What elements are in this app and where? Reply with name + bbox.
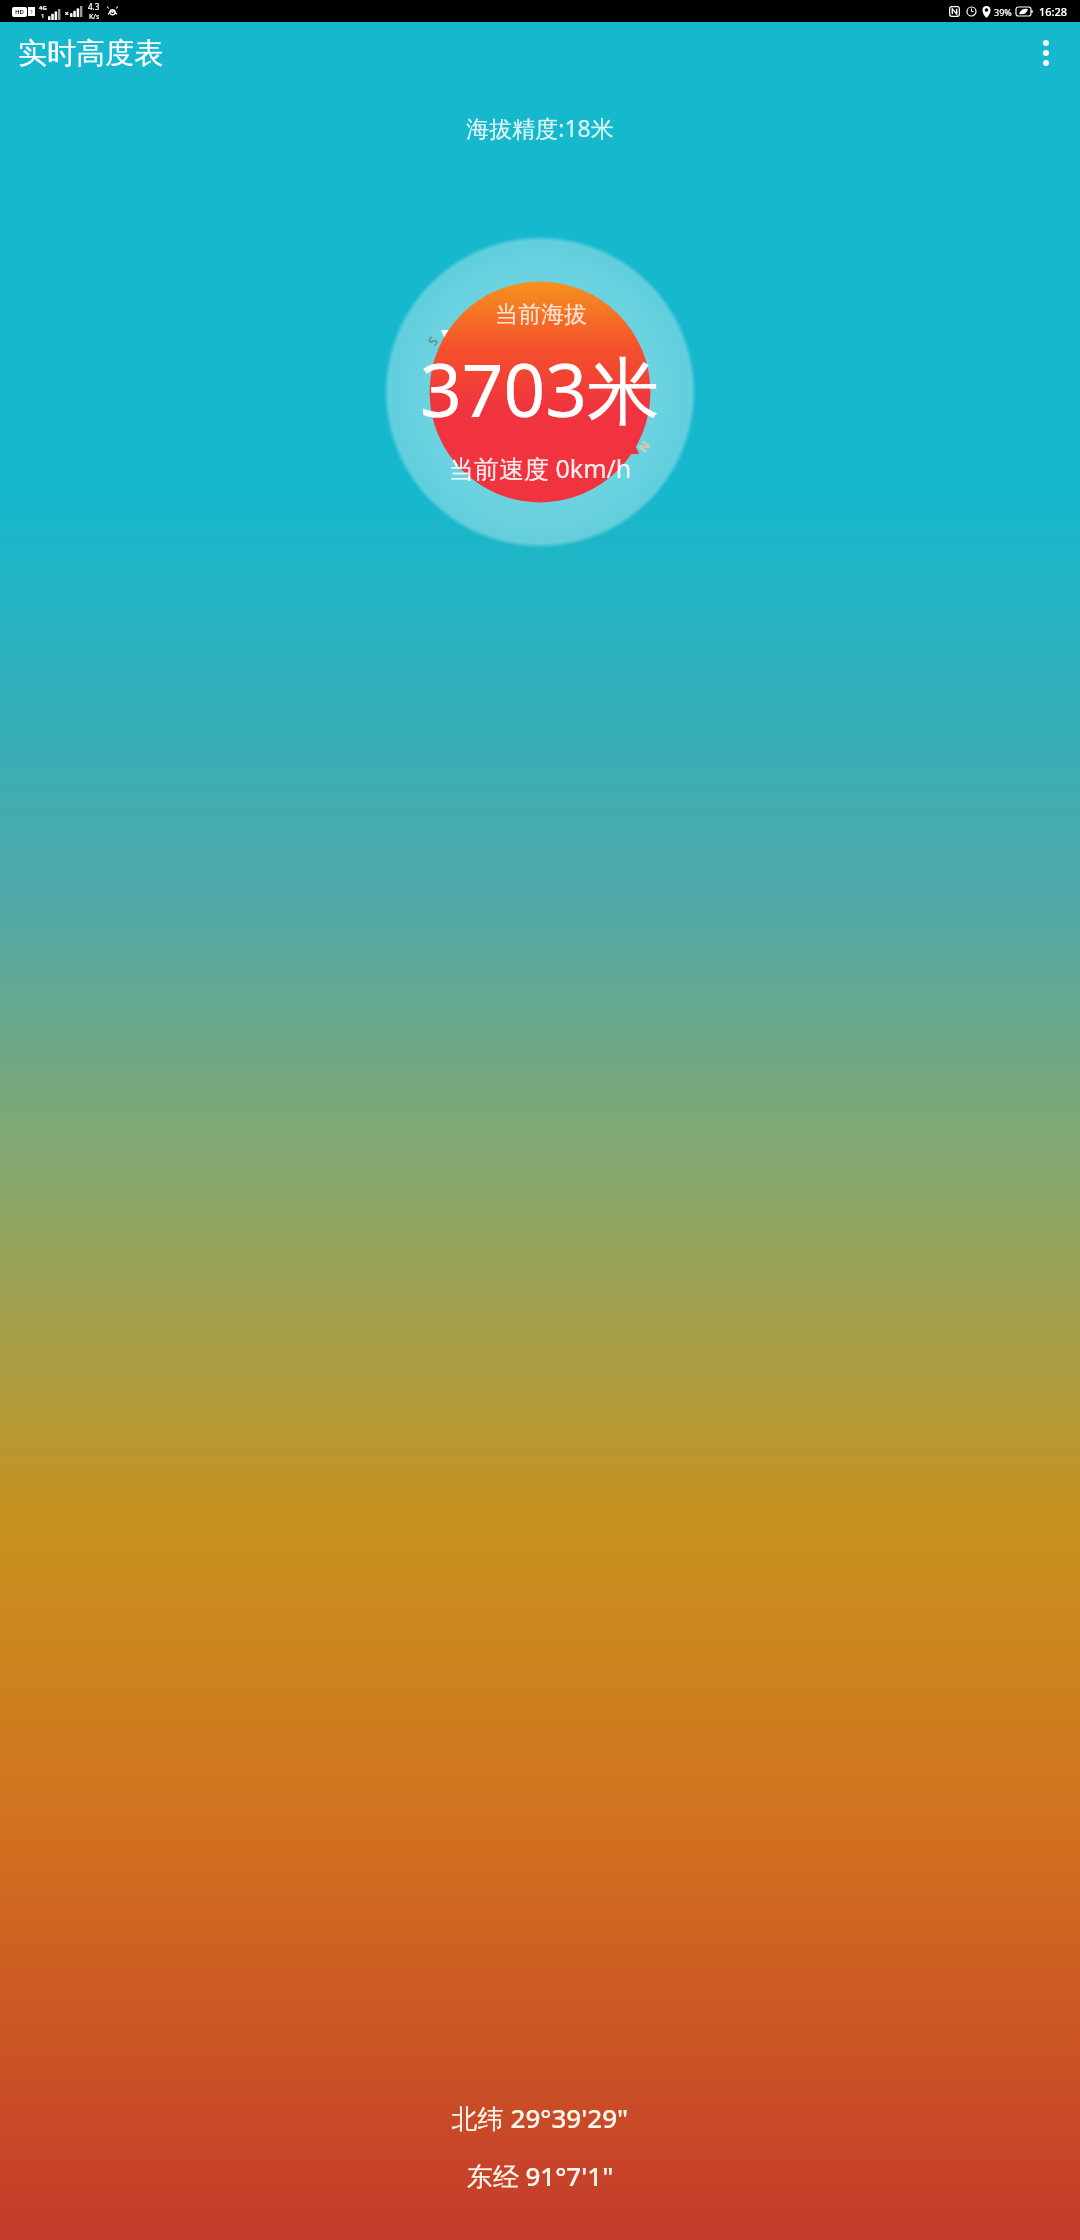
staticText: 4G: [39, 4, 47, 12]
staticText: 当前海拔: [495, 300, 587, 329]
staticText: K/s: [89, 12, 100, 22]
staticText: 东经 91°7'1": [0, 2158, 1080, 2194]
staticText: 39%: [994, 6, 1012, 18]
staticText: 海拔精度:18米: [0, 112, 1080, 143]
staticText: N: [634, 437, 655, 457]
staticText: x: [65, 9, 69, 17]
button[interactable]: More options: [1022, 29, 1070, 77]
staticText: 16:28: [1039, 4, 1068, 19]
staticText: 4.3: [88, 1, 100, 12]
staticText: S: [423, 334, 443, 350]
staticText: 当前速度 0km/h: [449, 451, 632, 485]
staticText: 3703米: [420, 339, 661, 439]
staticText: HD: [15, 8, 24, 16]
staticText: 1: [30, 8, 34, 16]
staticText: 实时高度表: [18, 35, 163, 72]
staticText: 北纬 29°39'29": [0, 2100, 1080, 2136]
staticText: 1: [41, 12, 45, 20]
